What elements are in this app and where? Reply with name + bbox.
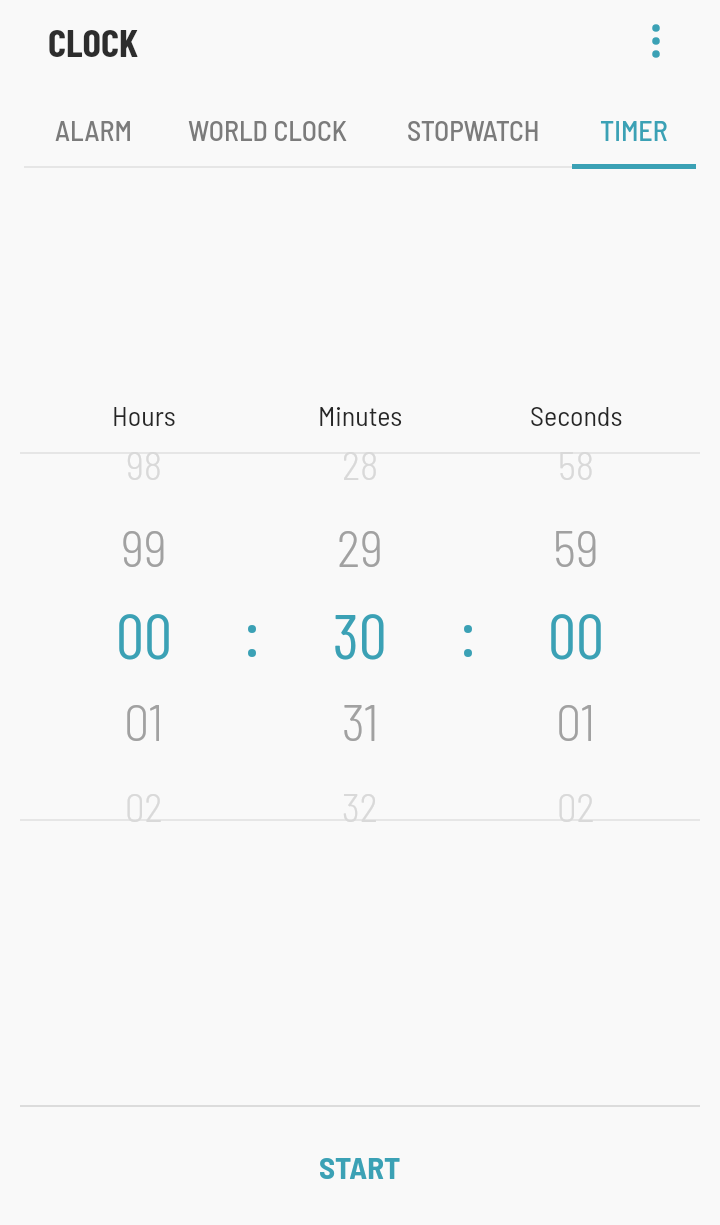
staticText: Hours	[112, 398, 176, 432]
staticText: 98	[126, 441, 162, 488]
staticText: CLOCK	[48, 18, 139, 65]
staticText: 00	[548, 596, 604, 672]
button[interactable]: TIMER	[572, 98, 696, 162]
staticText: 00	[116, 596, 172, 672]
staticText: ALARM	[55, 113, 132, 147]
staticText: 30	[333, 596, 387, 672]
staticText: 31	[342, 691, 379, 751]
button[interactable]: START	[240, 1121, 480, 1211]
button[interactable]: WORLD CLOCK	[161, 98, 373, 162]
button[interactable]: 00	[64, 590, 224, 678]
staticText: 58	[558, 441, 594, 488]
staticText: WORLD CLOCK	[188, 113, 347, 147]
button[interactable]: ALARM	[23, 98, 163, 162]
staticText: 01	[556, 691, 596, 751]
staticText: 28	[342, 441, 379, 488]
staticText: 99	[121, 517, 167, 577]
button[interactable]: 00	[496, 590, 656, 678]
staticText: Minutes	[318, 398, 403, 432]
button[interactable]: STOPWATCH	[375, 98, 571, 162]
staticText: 29	[337, 517, 383, 577]
button[interactable]: 30	[280, 590, 440, 678]
staticText: STOPWATCH	[407, 113, 540, 147]
button[interactable]	[632, 17, 680, 65]
staticText: START	[319, 1148, 401, 1185]
staticText: 01	[124, 691, 164, 751]
staticText: TIMER	[600, 113, 668, 147]
staticText: 32	[342, 783, 378, 830]
staticText: 02	[125, 783, 163, 830]
staticText: 59	[553, 517, 599, 577]
staticText: Seconds	[530, 398, 623, 432]
staticText: 02	[557, 783, 595, 830]
